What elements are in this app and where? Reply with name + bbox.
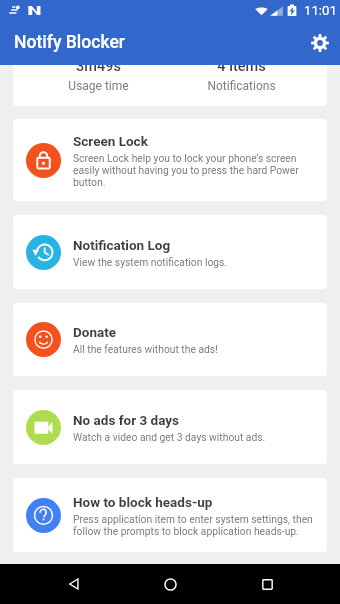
button[interactable]: Settings xyxy=(295,20,340,65)
button[interactable]: Notification Log xyxy=(13,215,327,289)
staticText: Watch a video and get 3 days without ads… xyxy=(73,431,266,443)
staticText: 11:01 xyxy=(304,3,337,18)
button[interactable]: No ads for 3 days xyxy=(13,390,327,464)
staticText: No ads for 3 days xyxy=(73,412,180,428)
button[interactable]: Screen Lock xyxy=(13,119,327,201)
staticText: Usage time xyxy=(68,79,129,93)
button[interactable]: Recent apps xyxy=(244,564,290,604)
staticText: 4 items xyxy=(217,58,266,75)
staticText: Notifications xyxy=(207,79,276,93)
staticText: Screen Lock help you to lock your phone'… xyxy=(73,152,315,188)
button[interactable]: Back xyxy=(51,564,97,604)
staticText: Press application item to enter system s… xyxy=(73,513,315,537)
staticText: How to block heads-up xyxy=(73,494,213,510)
staticText: Notify Blocker xyxy=(14,32,125,53)
staticText: All the features without the ads! xyxy=(73,343,218,355)
staticText: Donate xyxy=(73,324,117,340)
staticText: 3m49s xyxy=(76,58,121,75)
staticText: Notification Log xyxy=(73,237,171,253)
staticText: View the system notification logs. xyxy=(73,256,228,268)
button[interactable]: Home xyxy=(147,564,193,604)
button[interactable]: 3m49s xyxy=(13,6,327,106)
button[interactable]: How to block heads-up xyxy=(13,478,327,552)
staticText: Screen Lock xyxy=(73,133,148,149)
button[interactable]: Donate xyxy=(13,303,327,376)
